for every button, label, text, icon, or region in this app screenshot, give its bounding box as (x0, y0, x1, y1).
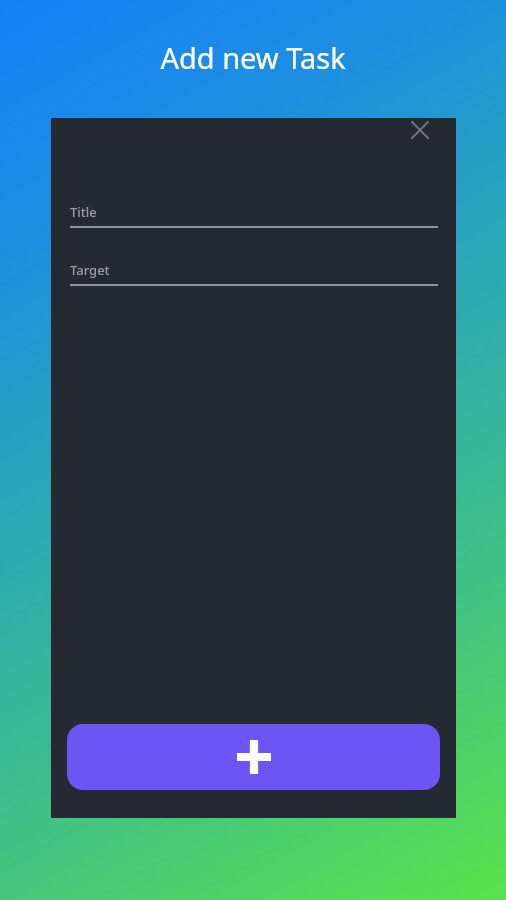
staticText: Title (70, 203, 97, 221)
staticText: Target (70, 261, 110, 279)
button[interactable]: Add task (67, 724, 440, 790)
button[interactable]: Close (401, 118, 439, 156)
button[interactable]: Title (70, 203, 438, 228)
button[interactable]: Target (70, 261, 438, 286)
staticText: Add new Task (0, 38, 506, 77)
